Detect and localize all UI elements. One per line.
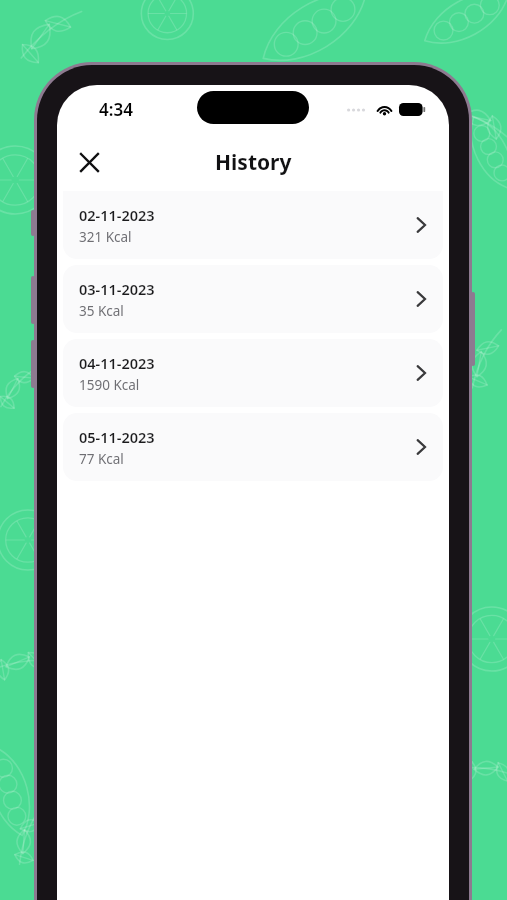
staticText: 03-11-2023 — [79, 279, 155, 299]
button[interactable]: Close — [67, 140, 111, 184]
button[interactable]: 04-11-2023 — [63, 339, 443, 407]
staticText: 35 Kcal — [79, 302, 124, 320]
staticText: 02-11-2023 — [79, 205, 155, 225]
staticText: 1590 Kcal — [79, 376, 140, 394]
staticText: 77 Kcal — [79, 450, 124, 468]
staticText: 4:34 — [99, 98, 133, 121]
staticText: History — [215, 148, 292, 177]
staticText: 321 Kcal — [79, 228, 132, 246]
button[interactable]: 05-11-2023 — [63, 413, 443, 481]
button[interactable]: 03-11-2023 — [63, 265, 443, 333]
staticText: 04-11-2023 — [79, 353, 155, 373]
button[interactable]: 02-11-2023 — [63, 191, 443, 259]
staticText: 05-11-2023 — [79, 427, 155, 447]
